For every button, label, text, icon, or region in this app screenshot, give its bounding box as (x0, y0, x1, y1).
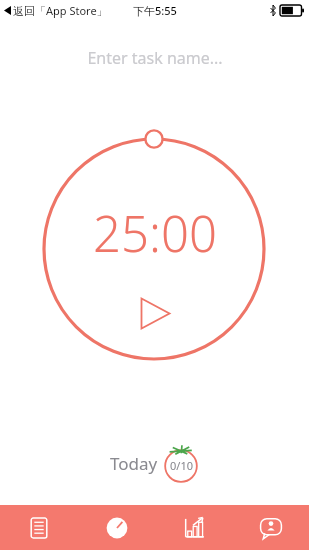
button[interactable]: Start timer (135, 293, 175, 333)
button[interactable]: Timer (78, 505, 155, 550)
staticText: 25:00 (93, 200, 217, 264)
other: Timer dial (0, 0, 309, 550)
staticText: 0/10 (170, 458, 193, 473)
staticText: 下午5:55 (133, 3, 177, 18)
button[interactable]: Feedback (232, 505, 309, 550)
button[interactable]: Today (110, 444, 199, 482)
button[interactable]: Tasks (0, 505, 78, 550)
staticText: Today (110, 452, 158, 475)
staticText: Enter task name... (87, 47, 223, 69)
button[interactable]: Enter task name... (0, 45, 309, 71)
button[interactable]: Statistics (155, 505, 232, 550)
staticText: 返回「App Store」 (13, 3, 108, 18)
